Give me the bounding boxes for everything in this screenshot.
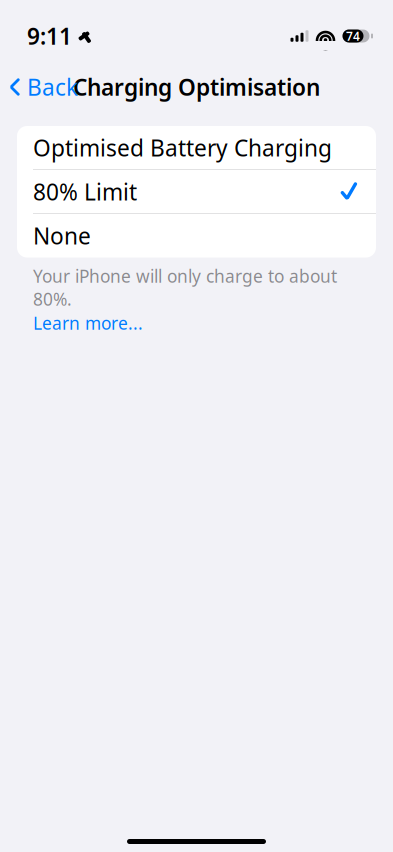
- button[interactable]: Learn more...: [33, 311, 143, 334]
- staticText: 9:11: [27, 21, 72, 51]
- button[interactable]: Optimised Battery Charging: [17, 126, 376, 169]
- staticText: 74: [346, 28, 360, 44]
- staticText: Your iPhone will only charge to about 80…: [33, 264, 337, 310]
- staticText: Back: [27, 72, 78, 102]
- staticText: Optimised Battery Charging: [33, 133, 332, 163]
- staticText: None: [33, 221, 91, 251]
- staticText: Learn more...: [33, 311, 143, 334]
- button[interactable]: None: [17, 214, 376, 257]
- staticText: 80% Limit: [33, 177, 137, 207]
- staticText: Charging Optimisation: [73, 72, 320, 102]
- button[interactable]: Back: [0, 66, 78, 108]
- button[interactable]: 80% Limit: [17, 170, 376, 213]
